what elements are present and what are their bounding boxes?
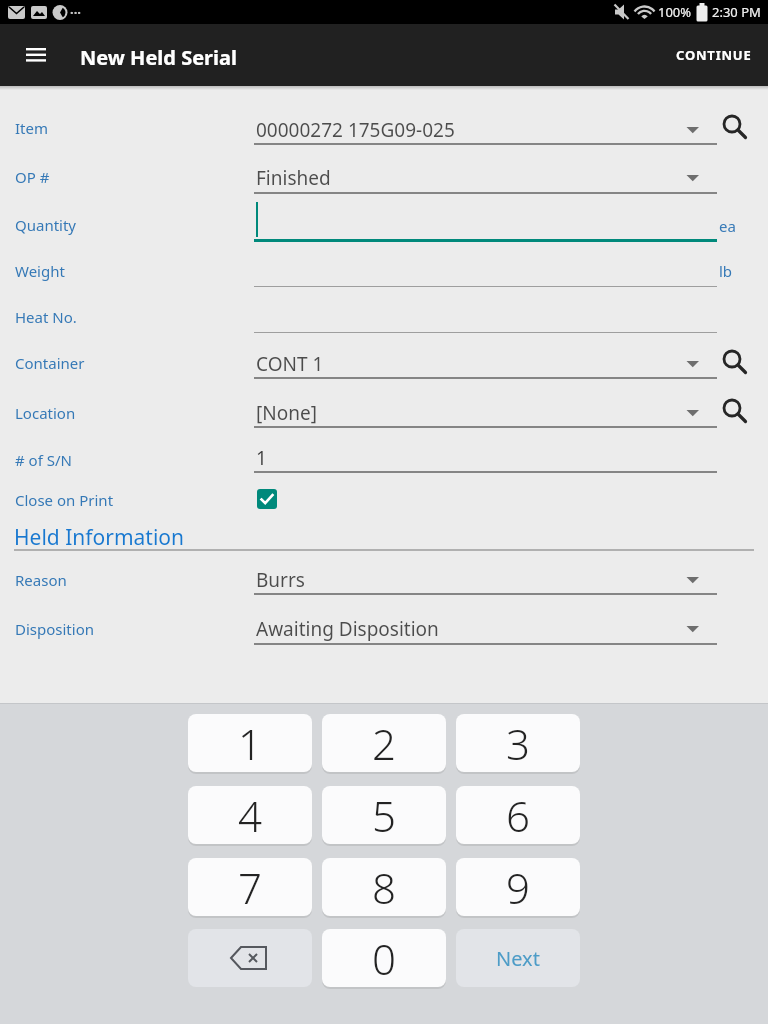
staticText: ... [70, 0, 81, 18]
staticText: Item [15, 118, 48, 138]
button[interactable]: 3 [456, 714, 580, 772]
staticText: Finished [256, 165, 331, 191]
staticText: 0 [372, 930, 396, 987]
button[interactable] [254, 114, 717, 144]
button[interactable] [254, 163, 717, 193]
staticText: 7 [238, 859, 262, 916]
staticText: Next [496, 945, 540, 972]
staticText: Reason [15, 570, 67, 590]
button[interactable]: Next [456, 929, 580, 987]
staticText: lb [719, 261, 733, 281]
button[interactable]: 8 [322, 858, 446, 916]
staticText: 4 [238, 787, 262, 844]
button[interactable] [254, 614, 717, 644]
button[interactable]: 2 [322, 714, 446, 772]
staticText: 00000272 175G09-025 [256, 117, 455, 143]
button[interactable]: 6 [456, 786, 580, 844]
button[interactable] [719, 346, 753, 380]
button[interactable] [188, 929, 312, 987]
staticText: CONT 1 [256, 351, 324, 377]
button[interactable] [254, 211, 717, 240]
staticText: Quantity [15, 215, 77, 235]
button[interactable] [254, 486, 280, 512]
button[interactable] [254, 565, 717, 595]
staticText: CONTINUE [676, 46, 752, 64]
staticText: OP # [15, 167, 50, 187]
staticText: 5 [372, 787, 396, 844]
staticText: 3 [506, 715, 530, 772]
staticText: Heat No. [15, 307, 77, 327]
button[interactable] [254, 398, 717, 428]
button[interactable]: 9 [456, 858, 580, 916]
staticText: [None] [256, 400, 317, 426]
staticText: Container [15, 353, 85, 373]
button[interactable]: 0 [322, 929, 446, 987]
button[interactable]: 5 [322, 786, 446, 844]
staticText: 1 [256, 445, 267, 471]
staticText: Weight [15, 261, 65, 281]
staticText: ea [719, 216, 736, 236]
staticText: 6 [506, 787, 530, 844]
button[interactable] [254, 349, 717, 379]
button[interactable] [719, 395, 753, 429]
button[interactable]: 7 [188, 858, 312, 916]
button[interactable]: 1 [188, 714, 312, 772]
staticText: Close on Print [15, 490, 114, 510]
staticText: New Held Serial [80, 44, 237, 71]
staticText: Burrs [256, 567, 305, 593]
staticText: Location [15, 403, 76, 423]
staticText: 2 [372, 715, 396, 772]
staticText: 1 [238, 715, 262, 772]
button[interactable] [254, 445, 717, 474]
staticText: 9 [506, 859, 530, 916]
button[interactable]: CONTINUE [670, 40, 758, 70]
staticText: Awaiting Disposition [256, 616, 439, 642]
staticText: Disposition [15, 619, 94, 639]
staticText: 2:30 PM [712, 3, 761, 21]
staticText: Held Information [14, 523, 184, 549]
staticText: # of S/N [15, 450, 72, 470]
staticText: 100% [658, 3, 692, 21]
button[interactable]: 4 [188, 786, 312, 844]
button[interactable] [719, 111, 753, 145]
button[interactable] [16, 35, 56, 75]
staticText: 8 [372, 859, 396, 916]
